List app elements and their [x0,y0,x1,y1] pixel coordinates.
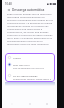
button[interactable]: Solo con Wi-Fi [8,62,53,73]
button[interactable]: Recents [40,100,54,108]
staticText: Se descargan siempre. Puede afectar a tu… [13,78,53,81]
staticText: Descarga automática [12,8,45,12]
staticText: Nunca [13,56,21,59]
staticText: 10:48 [5,2,12,6]
button[interactable]: Nunca [8,55,53,62]
button[interactable]: Home [23,100,37,108]
staticText: Solo se descargan con red Wi-Fi [13,67,45,70]
button[interactable]: Back [6,7,11,12]
button[interactable]: Wi-Fi y datos móviles [8,73,53,82]
staticText: Elige cuándo quieres que la aplicación d… [7,12,53,45]
staticText: Solo con Wi-Fi [13,63,30,66]
staticText: Wi-Fi y datos móviles [13,74,38,77]
